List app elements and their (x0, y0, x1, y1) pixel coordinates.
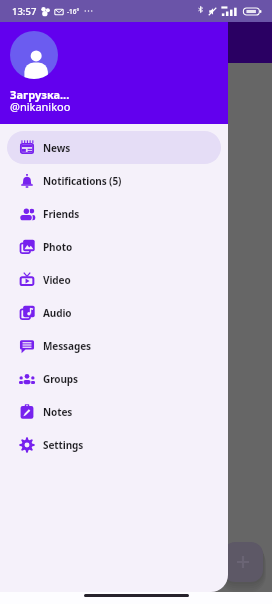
staticText: Friends (43, 207, 80, 221)
button[interactable]: Notes (7, 395, 221, 428)
staticText: Audio (43, 306, 72, 320)
staticText: Groups (43, 372, 78, 386)
button[interactable]: Add (223, 542, 263, 582)
button[interactable]: Settings (7, 428, 221, 461)
staticText: Video (43, 273, 71, 287)
button[interactable]: Friends (7, 197, 221, 230)
staticText: Notifications (5) (43, 174, 122, 188)
staticText: Загрузка... (10, 87, 70, 102)
staticText: Photo (43, 240, 73, 254)
button[interactable]: News (7, 131, 221, 164)
staticText: 13:57 (12, 5, 37, 18)
staticText: News (43, 141, 71, 155)
staticText: -16° (67, 7, 80, 16)
button[interactable]: Audio (7, 296, 221, 329)
button[interactable]: Messages (7, 329, 221, 362)
button[interactable]: Notifications (5) (7, 164, 221, 197)
staticText: Settings (43, 438, 84, 452)
button[interactable]: Video (7, 263, 221, 296)
button[interactable]: Photo (7, 230, 221, 263)
staticText: Messages (43, 339, 91, 353)
staticText: @nikanikoo (10, 99, 71, 114)
button[interactable]: Groups (7, 362, 221, 395)
staticText: Notes (43, 405, 73, 419)
